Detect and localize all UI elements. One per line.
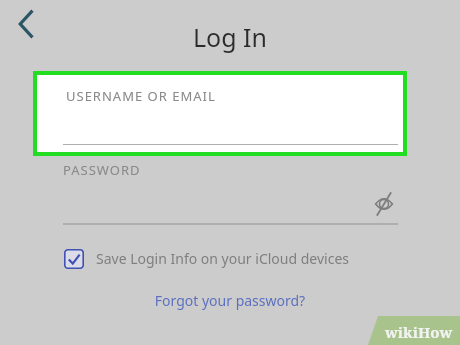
- button[interactable]: Show password: [370, 190, 398, 218]
- staticText: Save Login Info on your iCloud devices: [96, 249, 349, 268]
- staticText: wikiHow: [385, 322, 453, 342]
- button[interactable]: Save Login Info on your iCloud devices: [60, 244, 370, 274]
- button[interactable]: [37, 75, 403, 152]
- staticText: USERNAME OR EMAIL: [66, 87, 216, 105]
- button[interactable]: Forgot your password?: [0, 291, 460, 345]
- button[interactable]: Back: [8, 6, 44, 42]
- staticText: Forgot your password?: [0, 291, 460, 345]
- staticText: PASSWORD: [63, 161, 141, 179]
- staticText: Log In: [0, 20, 460, 345]
